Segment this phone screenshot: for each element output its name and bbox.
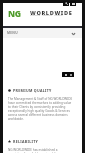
button[interactable]: MENU bbox=[0, 28, 85, 38]
staticText: NG bbox=[8, 8, 21, 20]
staticText: shipping · logistics · trading bbox=[30, 14, 63, 17]
staticText: WORLDWIDE bbox=[30, 9, 73, 17]
staticText: PREMIUM QUALITY bbox=[13, 88, 52, 93]
staticText: RELIABILITY bbox=[13, 139, 39, 144]
staticText: The Management & Staff of NG WORLDWIDE h… bbox=[8, 97, 73, 121]
staticText: NG WORLDWIDE has established a reputatio… bbox=[8, 148, 73, 153]
staticText: MENU bbox=[7, 31, 18, 35]
button[interactable]: Slide indicator bbox=[62, 72, 74, 77]
button[interactable]: Cart bbox=[70, 1, 76, 6]
button[interactable]: Search bbox=[63, 1, 69, 6]
